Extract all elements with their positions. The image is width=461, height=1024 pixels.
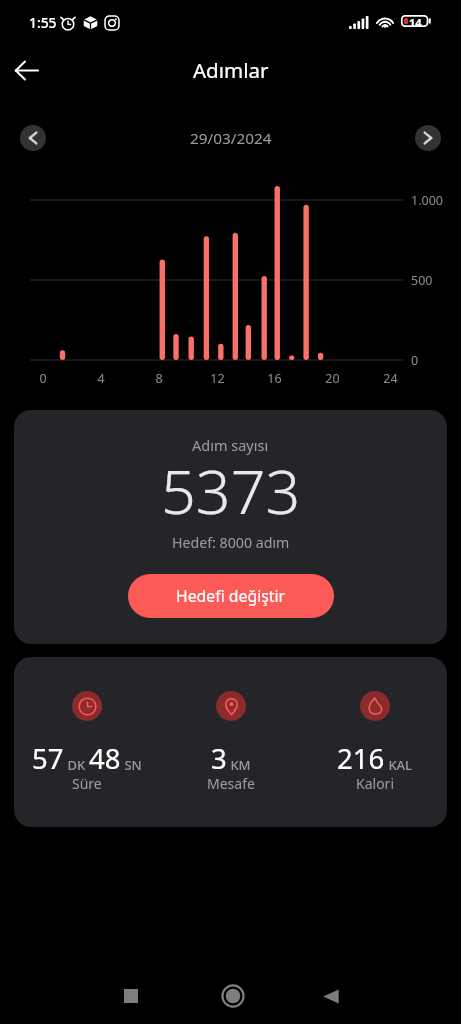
staticText: 500 — [411, 272, 433, 289]
staticText: Mesafe — [207, 774, 255, 793]
button[interactable]: Back — [307, 972, 355, 1020]
staticText: 3 — [211, 740, 227, 777]
staticText: Hedef: 8000 adım — [172, 533, 290, 552]
staticText: 57 — [32, 740, 64, 777]
staticText: Adımlar — [193, 56, 269, 84]
staticText: 12 — [210, 370, 225, 387]
staticText: 14 — [409, 15, 422, 30]
button[interactable]: Back — [6, 50, 46, 90]
staticText: 20 — [325, 370, 340, 387]
staticText: 0 — [411, 352, 419, 369]
staticText: DK — [64, 756, 89, 774]
staticText: Süre — [72, 774, 102, 793]
staticText: 29/03/2024 — [190, 128, 272, 149]
staticText: 1.000 — [411, 192, 443, 209]
staticText: 24 — [383, 370, 398, 387]
staticText: SN — [121, 756, 142, 774]
staticText: Kalori — [356, 774, 394, 793]
staticText: 216 — [337, 740, 385, 777]
button[interactable]: Previous day — [20, 125, 46, 151]
staticText: 1:55 — [29, 13, 57, 32]
staticText: 5373 — [161, 449, 301, 532]
staticText: 0 — [39, 370, 47, 387]
staticText: 48 — [89, 740, 121, 777]
button[interactable]: Recents — [107, 972, 155, 1020]
staticText: KM — [227, 756, 251, 774]
staticText: 8 — [155, 370, 163, 387]
button[interactable]: Home — [209, 972, 257, 1020]
staticText: 4 — [97, 370, 105, 387]
staticText: Hedefi değiştir — [176, 585, 286, 607]
staticText: KAL — [385, 756, 413, 774]
staticText: 16 — [267, 370, 282, 387]
button[interactable]: Next day — [415, 125, 441, 151]
staticText: Adım sayısı — [192, 435, 269, 455]
button[interactable]: Hedefi değiştir — [128, 574, 334, 618]
